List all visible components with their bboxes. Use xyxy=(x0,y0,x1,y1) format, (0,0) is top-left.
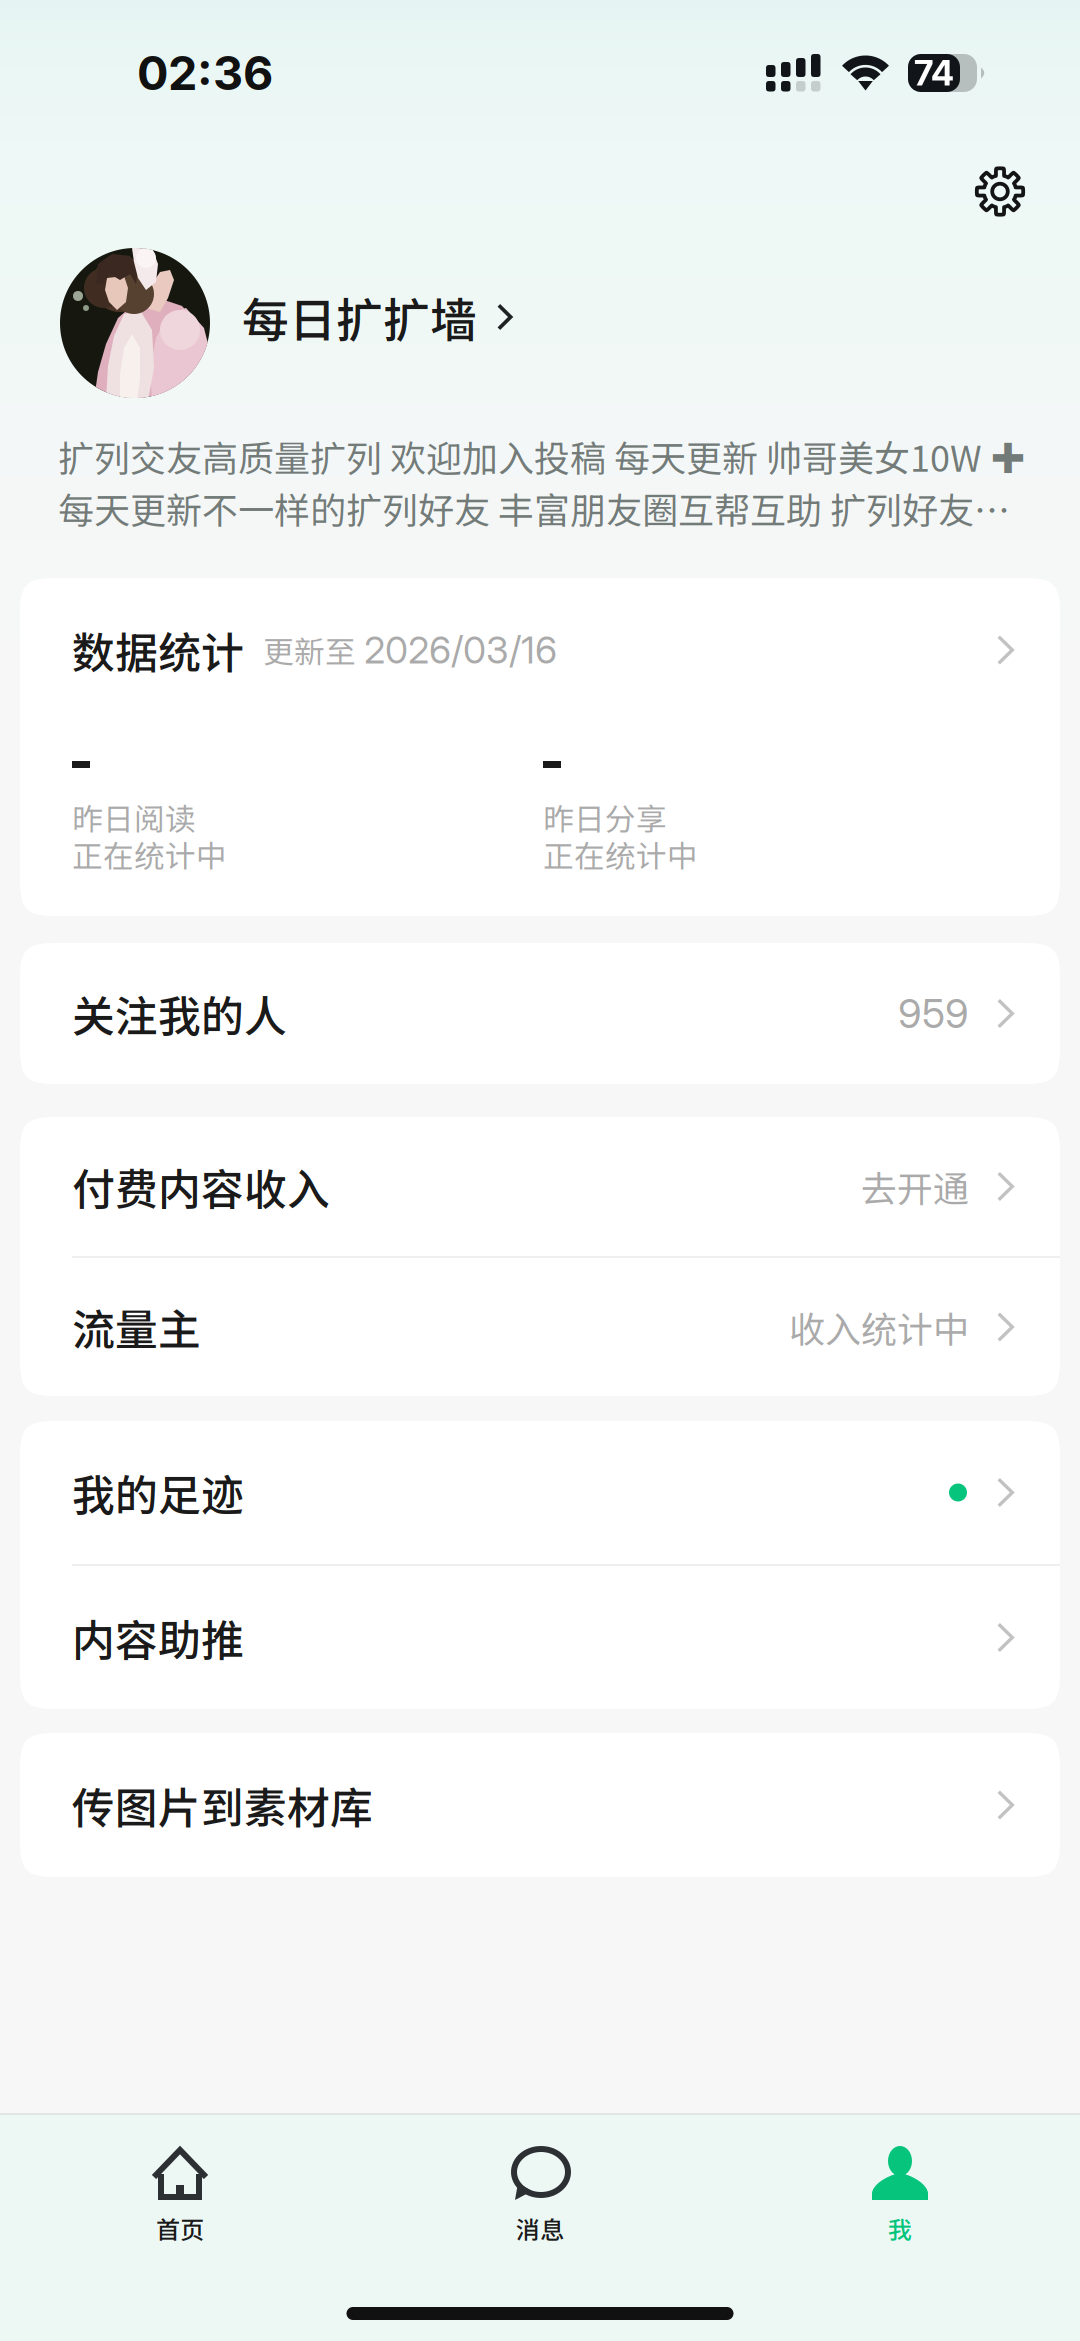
staticText: 昨日阅读 xyxy=(72,795,196,839)
button[interactable]: 每日扩扩墙 xyxy=(0,248,1080,398)
button[interactable]: 付费内容收入 xyxy=(20,1117,1060,1256)
staticText: 每日扩扩墙 xyxy=(242,283,477,351)
staticText: 我的足迹 xyxy=(72,1462,244,1523)
staticText: 更新至 xyxy=(263,628,356,672)
button[interactable]: 关注我的人 xyxy=(20,943,1060,1084)
button[interactable]: 传图片到素材库 xyxy=(20,1733,1060,1877)
staticText: 关注我的人 xyxy=(72,983,287,1044)
staticText: 去开通 xyxy=(861,1160,969,1212)
staticText: 数据统计 xyxy=(72,619,244,681)
button[interactable]: 流量主 xyxy=(20,1258,1060,1396)
staticText: 内容助推 xyxy=(72,1607,244,1668)
button[interactable]: 我 xyxy=(720,2146,1080,2266)
staticText: 我 xyxy=(888,2211,912,2246)
staticText: 2026/03/16 xyxy=(364,627,557,673)
button[interactable]: 消息 xyxy=(360,2146,720,2266)
button[interactable]: 数据统计 xyxy=(20,578,1060,722)
staticText: 正在统计中 xyxy=(72,832,227,876)
staticText: 74 xyxy=(914,52,954,94)
staticText: 传图片到素材库 xyxy=(72,1774,373,1836)
staticText: 付费内容收入 xyxy=(72,1156,330,1217)
staticText: 每天更新不一样的扩列好友 丰富朋友圈互帮互助 扩列好友… xyxy=(58,482,1010,534)
button[interactable]: Settings xyxy=(959,150,1041,232)
staticText: 流量主 xyxy=(72,1296,201,1358)
staticText: 扩列交友高质量扩列 欢迎加入投稿 每天更新 帅哥美女10W ✚ xyxy=(58,430,1026,482)
staticText: 昨日分享 xyxy=(543,795,667,839)
staticText: 首页 xyxy=(156,2211,204,2246)
button[interactable]: 首页 xyxy=(0,2146,360,2266)
staticText: 消息 xyxy=(516,2211,564,2246)
staticText: 02:36 xyxy=(137,45,273,101)
staticText: 收入统计中 xyxy=(789,1301,969,1353)
button[interactable]: 内容助推 xyxy=(20,1566,1060,1709)
staticText: 正在统计中 xyxy=(543,832,698,876)
button[interactable]: 我的足迹 xyxy=(20,1421,1060,1564)
staticText: 959 xyxy=(898,989,969,1038)
